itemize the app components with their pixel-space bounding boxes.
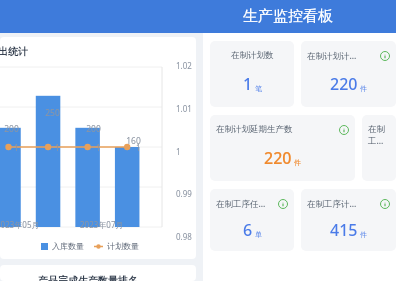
staticText: 2023年07月 [80, 219, 124, 230]
staticText: 单 [255, 230, 262, 239]
staticText: 6 [243, 219, 253, 241]
staticText: 1 [55, 142, 60, 153]
staticText: 产出统计 [0, 45, 28, 58]
staticText: 生产监控看板 [243, 7, 333, 26]
staticText: 在制计划数 [231, 50, 274, 61]
staticText: 220 [264, 147, 292, 169]
staticText: 入库数量 [52, 241, 84, 251]
button[interactable]: 在制工... [362, 115, 396, 181]
staticText: 1 [136, 142, 141, 153]
button[interactable]: 在制计划数 [210, 41, 294, 107]
button[interactable]: 产出统计 [0, 37, 196, 259]
button[interactable]: 产品完成生产数量排名 [0, 265, 196, 281]
staticText: 在制工序计... [307, 198, 357, 210]
staticText: 计划数量 [107, 241, 139, 251]
staticText: 1 [14, 142, 19, 153]
staticText: 415 [330, 219, 358, 241]
staticText: 产品完成生产数量排名 [38, 274, 138, 281]
staticText: 件 [294, 158, 301, 167]
staticText: 250 [45, 107, 60, 119]
button[interactable]: 在制计划延期生产数 [210, 115, 355, 181]
button[interactable]: 在制工序任... [210, 189, 294, 251]
staticText: 1.01 [176, 103, 192, 114]
staticText: 在制计划延期生产数 [216, 124, 293, 135]
staticText: 220 [330, 73, 358, 95]
staticText: 1 [243, 73, 253, 95]
staticText: 1.02 [176, 60, 192, 71]
staticText: 笔 [255, 84, 262, 93]
button[interactable]: 信息 [278, 199, 288, 209]
button[interactable]: 信息 [380, 199, 390, 209]
staticText: 在制工... [368, 124, 390, 147]
staticText: 2023年05月 [0, 219, 40, 230]
staticText: 200 [86, 123, 101, 135]
staticText: 1 [176, 146, 181, 157]
button[interactable]: 在制工序计... [301, 189, 396, 251]
staticText: 在制计划计... [307, 50, 357, 62]
staticText: 160 [126, 135, 141, 147]
staticText: 1 [96, 142, 101, 153]
staticText: 在制工序任... [216, 198, 266, 210]
button[interactable]: 信息 [339, 125, 349, 135]
staticText: 件 [360, 230, 367, 239]
staticText: 0.98 [176, 231, 192, 242]
staticText: 0.99 [176, 188, 192, 199]
staticText: 200 [4, 123, 19, 135]
button[interactable]: 信息 [380, 51, 390, 61]
staticText: 件 [360, 84, 367, 93]
button[interactable]: 在制计划计... [301, 41, 396, 107]
